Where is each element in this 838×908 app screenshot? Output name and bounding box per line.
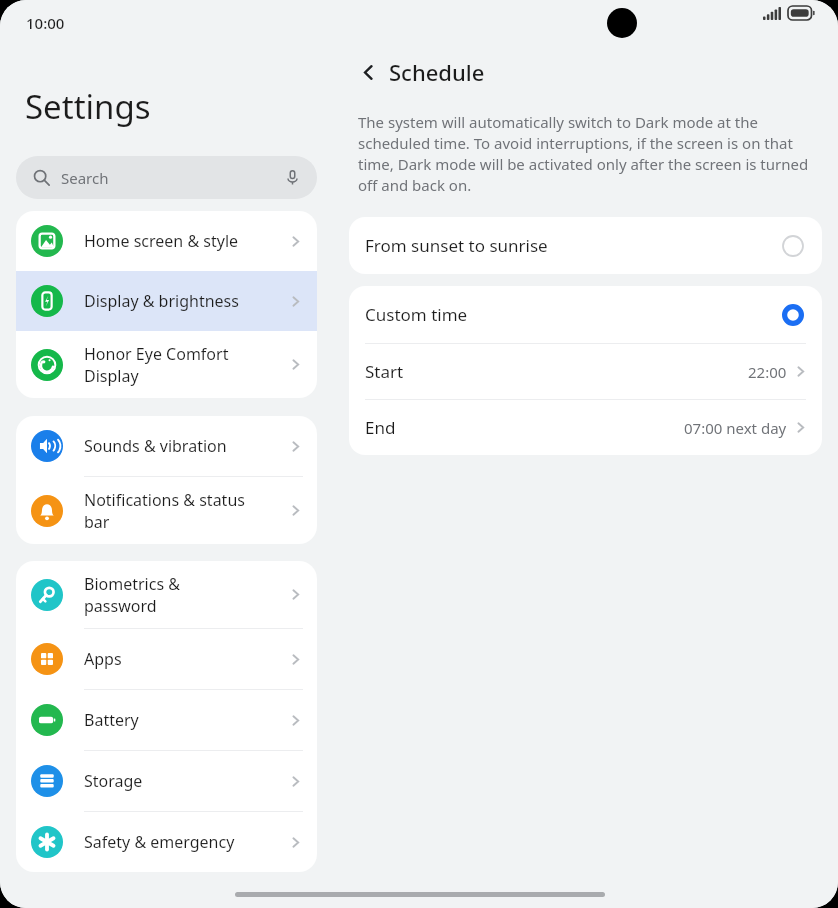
staticText: Custom time [365,303,782,326]
button[interactable]: Biometrics & password [16,561,317,628]
staticText: Schedule [389,57,485,87]
staticText: Safety & emergency [84,831,288,853]
button[interactable]: Apps [16,629,317,689]
staticText: The system will automatically switch to … [358,112,818,196]
button[interactable]: Honor Eye Comfort Display [16,331,317,398]
staticText: Biometrics & password [84,573,288,617]
button[interactable]: End [349,400,822,455]
staticText: Battery [84,709,288,731]
staticText: Honor Eye Comfort Display [84,343,288,387]
button[interactable]: Storage [16,751,317,811]
button[interactable]: Custom time [349,286,822,343]
button[interactable]: Start [349,344,822,399]
button[interactable]: Home screen & style [16,211,317,271]
button[interactable]: From sunset to sunrise [349,217,822,274]
staticText: Sounds & vibration [84,435,288,457]
staticText: From sunset to sunrise [365,234,782,257]
button[interactable]: Search [16,156,317,199]
staticText: End [365,416,684,439]
button[interactable]: Notifications & status bar [16,477,317,544]
staticText: Storage [84,770,288,792]
staticText: Search [61,168,109,188]
staticText: 22:00 [748,362,787,382]
staticText: Start [365,360,748,383]
staticText: Apps [84,648,288,670]
button[interactable]: Battery [16,690,317,750]
button[interactable]: Sounds & vibration [16,416,317,476]
staticText: 10:00 [26,13,65,33]
staticText: Settings [25,84,151,129]
staticText: Display & brightness [84,290,288,312]
button[interactable]: Safety & emergency [16,812,317,872]
staticText: Notifications & status bar [84,489,288,533]
button[interactable]: Back [356,57,485,87]
staticText: Home screen & style [84,230,288,252]
other: Back [356,60,380,84]
staticText: 07:00 next day [684,418,787,438]
button[interactable]: Display & brightness [16,271,317,331]
